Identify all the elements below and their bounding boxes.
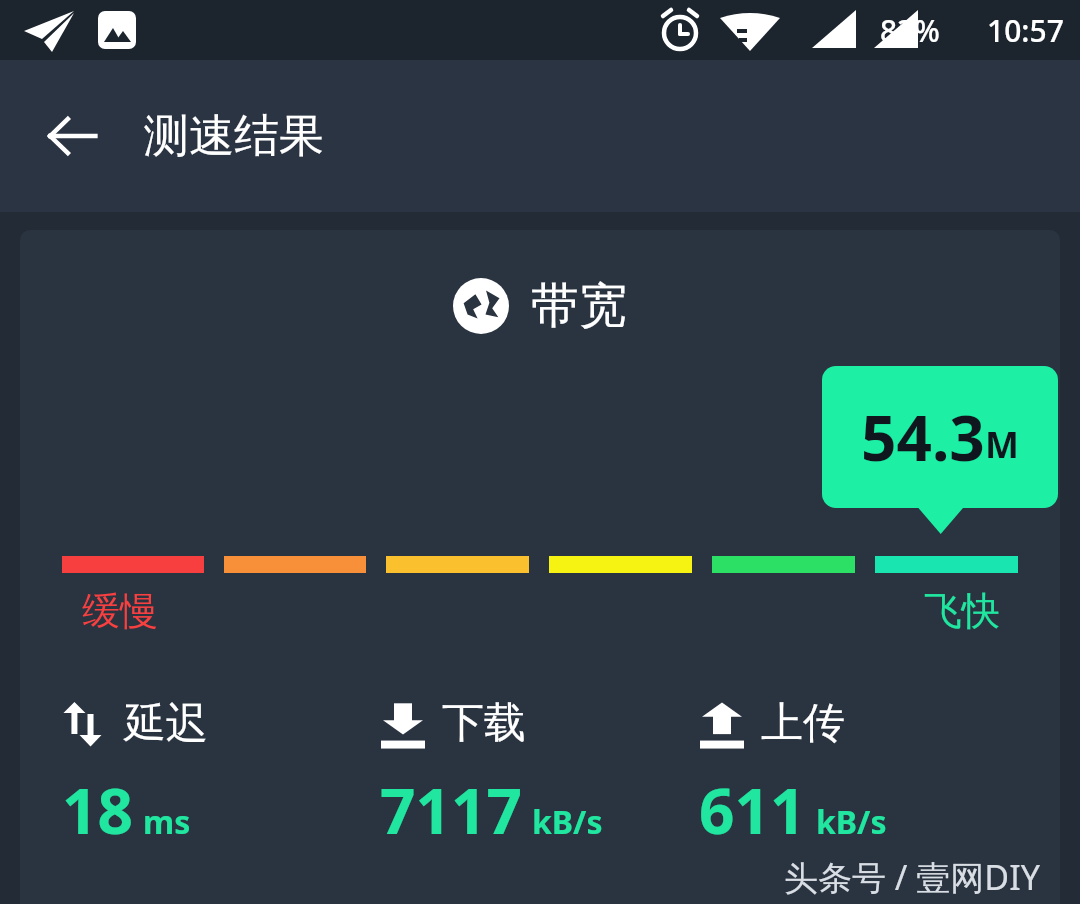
other: Bandwidth <box>453 278 509 334</box>
staticText: M <box>985 420 1019 469</box>
staticText: 611 <box>699 768 806 852</box>
staticText: 上传 <box>761 697 845 750</box>
button[interactable]: 延迟 <box>62 697 380 852</box>
button[interactable]: 上传 <box>699 697 1018 852</box>
staticText: ms <box>143 800 191 844</box>
staticText: 54.3 <box>861 395 985 479</box>
button[interactable]: 下载 <box>380 697 699 852</box>
staticText: 7117 <box>380 768 522 852</box>
staticText: 10:57 <box>987 10 1064 51</box>
staticText: 下载 <box>442 697 526 750</box>
button[interactable]: Back <box>30 94 114 178</box>
staticText: 缓慢 <box>82 587 158 635</box>
staticText: kB/s <box>532 800 603 844</box>
staticText: 飞快 <box>924 587 1000 635</box>
staticText: kB/s <box>816 800 887 844</box>
staticText: 18 <box>62 768 133 852</box>
staticText: 头条号 / 壹网DIY <box>784 854 1040 900</box>
staticText: 83% <box>880 10 940 51</box>
staticText: 测速结果 <box>144 108 324 165</box>
staticText: 延迟 <box>124 697 208 750</box>
staticText: 带宽 <box>531 276 627 336</box>
